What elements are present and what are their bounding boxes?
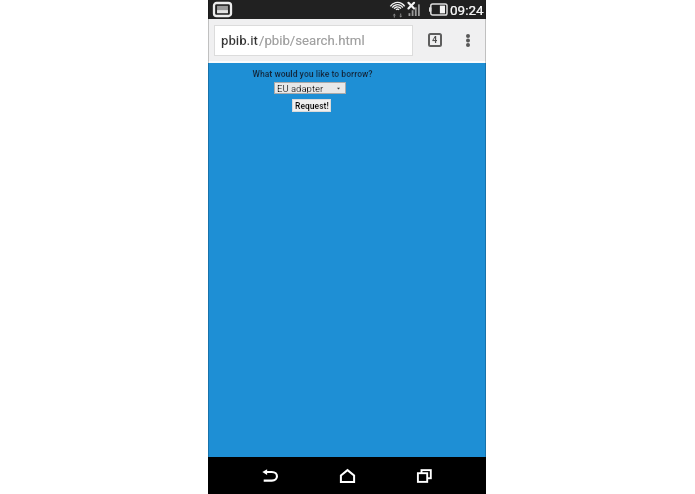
button[interactable]: Tabs, 4 open — [419, 25, 451, 55]
staticText: EU adapter — [277, 83, 324, 94]
staticText: pbib.it — [221, 33, 259, 48]
button[interactable]: Request! — [292, 99, 331, 112]
staticText: /pbib/search.html — [259, 33, 365, 48]
button[interactable]: Recent apps — [395, 457, 453, 494]
staticText: Request! — [295, 101, 329, 111]
staticText: 4 — [432, 35, 438, 46]
staticText: 09:24 — [450, 2, 484, 18]
staticText: What would you like to borrow? — [252, 69, 373, 79]
button[interactable]: EU adapter — [274, 82, 346, 94]
button[interactable]: More options — [453, 25, 483, 55]
button[interactable]: Home — [318, 457, 376, 494]
button[interactable]: pbib.it — [214, 25, 413, 56]
button[interactable]: Back — [241, 457, 299, 494]
